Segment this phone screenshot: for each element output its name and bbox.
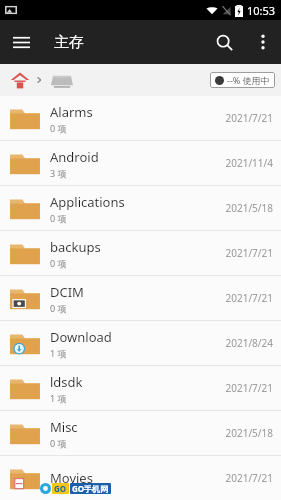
button[interactable]: Misc — [0, 411, 281, 456]
button[interactable]: backups — [0, 231, 281, 276]
button[interactable]: Menu — [0, 21, 42, 63]
staticText: 2021/7/21 — [225, 246, 273, 260]
staticText: 0 项 — [50, 302, 67, 314]
staticText: backups — [50, 238, 101, 256]
button[interactable]: Search — [203, 21, 245, 63]
button[interactable]: Home — [8, 68, 32, 92]
staticText: 0 项 — [50, 257, 67, 269]
staticText: 2021/8/24 — [225, 336, 273, 350]
staticText: Alarms — [50, 103, 93, 121]
staticText: 2021/7/21 — [225, 291, 273, 305]
staticText: 3 项 — [50, 167, 67, 179]
staticText: Movies — [50, 469, 93, 487]
button[interactable]: Download — [0, 321, 281, 366]
staticText: 10:53 — [247, 3, 276, 18]
staticText: 2021/11/4 — [225, 156, 273, 170]
button[interactable]: More options — [245, 24, 281, 60]
staticText: ldsdk — [50, 373, 83, 391]
staticText: DCIM — [50, 283, 84, 301]
button[interactable]: Applications — [0, 186, 281, 231]
staticText: 主存 — [54, 33, 84, 52]
staticText: 2021/5/18 — [225, 201, 273, 215]
button[interactable]: Android — [0, 141, 281, 186]
staticText: 1 项 — [50, 392, 67, 404]
staticText: --% 使用中 — [227, 74, 270, 86]
staticText: Applications — [50, 193, 125, 211]
staticText: 2021/5/18 — [225, 426, 273, 440]
staticText: 1 项 — [50, 347, 67, 359]
button[interactable]: ldsdk — [0, 366, 281, 411]
staticText: Download — [50, 328, 112, 346]
staticText: GO — [54, 483, 67, 494]
button[interactable]: --% 使用中 — [210, 72, 275, 88]
button[interactable]: DCIM — [0, 276, 281, 321]
staticText: GO手机网 — [72, 483, 109, 494]
button[interactable]: Internal storage — [49, 69, 75, 91]
button[interactable]: Alarms — [0, 96, 281, 141]
staticText: 2021/7/21 — [225, 111, 273, 125]
staticText: 2021/7/21 — [225, 471, 273, 485]
staticText: 2021/7/21 — [225, 381, 273, 395]
staticText: Android — [50, 148, 99, 166]
staticText: 0 项 — [50, 122, 67, 134]
button[interactable]: Movies — [0, 456, 281, 500]
staticText: Misc — [50, 418, 78, 436]
staticText: 0 项 — [50, 212, 67, 224]
staticText: 0 项 — [50, 437, 67, 449]
